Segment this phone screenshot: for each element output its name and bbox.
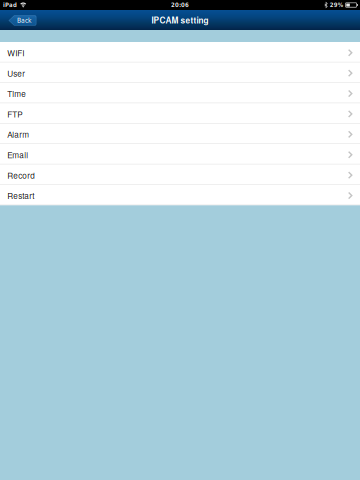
staticText: 29% xyxy=(330,1,343,8)
button[interactable]: User xyxy=(0,62,360,83)
button[interactable]: Record xyxy=(0,164,360,185)
button[interactable]: Alarm xyxy=(0,124,360,144)
button[interactable]: WIFI xyxy=(0,42,360,62)
button[interactable]: FTP xyxy=(0,103,360,124)
button[interactable]: Back xyxy=(8,14,36,26)
staticText: Alarm xyxy=(7,128,29,140)
staticText: IPCAM setting xyxy=(151,14,208,26)
button[interactable]: Time xyxy=(0,83,360,103)
staticText: Restart xyxy=(7,190,34,201)
button[interactable]: Email xyxy=(0,144,360,164)
staticText: User xyxy=(7,67,25,79)
staticText: Back xyxy=(17,16,32,24)
staticText: iPad xyxy=(3,1,17,8)
staticText: Time xyxy=(7,88,26,99)
button[interactable]: Restart xyxy=(0,185,360,205)
staticText: FTP xyxy=(7,108,22,120)
staticText: Record xyxy=(7,169,35,181)
staticText: WIFI xyxy=(7,47,24,58)
staticText: Email xyxy=(7,149,28,160)
staticText: 20:06 xyxy=(171,1,189,8)
